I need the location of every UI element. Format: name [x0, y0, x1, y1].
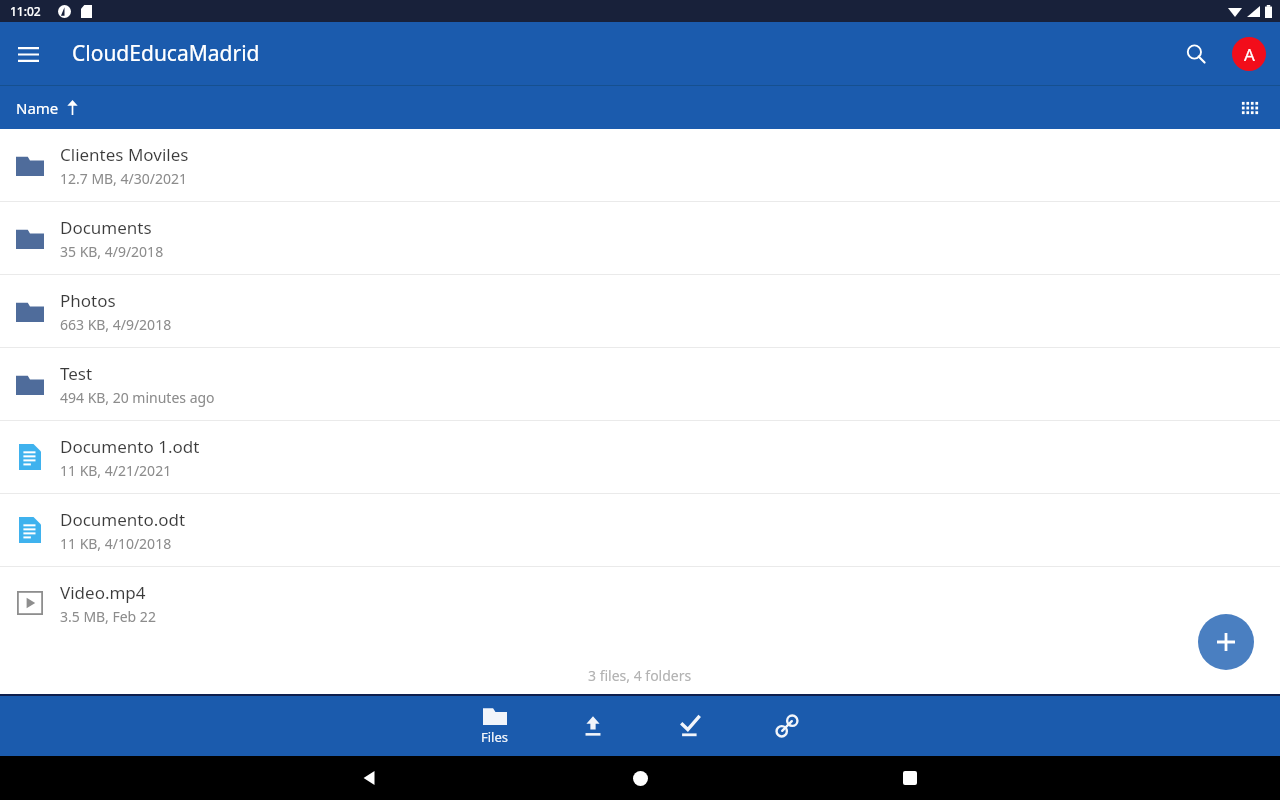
staticText: Documento.odt: [60, 508, 186, 531]
staticText: 663 KB, 4/9/2018: [60, 315, 172, 334]
button[interactable]: Account: [1232, 37, 1266, 71]
staticText: Photos: [60, 289, 116, 312]
button[interactable]: Photos: [0, 275, 1280, 347]
button[interactable]: Home: [620, 758, 660, 798]
staticText: Documento 1.odt: [60, 435, 200, 458]
staticText: Clientes Moviles: [60, 143, 189, 166]
button[interactable]: Recent apps: [890, 758, 930, 798]
staticText: Test: [60, 362, 93, 385]
staticText: CloudEducaMadrid: [72, 39, 260, 68]
button[interactable]: Documento.odt: [0, 494, 1280, 566]
staticText: 494 KB, 20 minutes ago: [60, 388, 215, 407]
button[interactable]: Shared links: [738, 696, 835, 756]
button[interactable]: Name: [0, 86, 89, 129]
button[interactable]: Documento 1.odt: [0, 421, 1280, 493]
staticText: 35 KB, 4/9/2018: [60, 242, 164, 261]
button[interactable]: Files: [446, 696, 544, 756]
staticText: 11 KB, 4/21/2021: [60, 461, 172, 480]
button[interactable]: Upload: [544, 696, 641, 756]
staticText: 11 KB, 4/10/2018: [60, 534, 172, 553]
staticText: 3.5 MB, Feb 22: [60, 607, 156, 626]
staticText: 12.7 MB, 4/30/2021: [60, 169, 187, 188]
staticText: Video.mp4: [60, 581, 146, 604]
button[interactable]: Documents: [0, 202, 1280, 274]
button[interactable]: Video.mp4: [0, 567, 1280, 639]
staticText: 11:02: [10, 3, 41, 19]
button[interactable]: Add: [1198, 614, 1254, 670]
staticText: 3 files, 4 folders: [588, 666, 692, 685]
button[interactable]: Open navigation menu: [8, 34, 48, 74]
button[interactable]: Switch to grid view: [1232, 90, 1268, 126]
button[interactable]: Select files: [641, 696, 738, 756]
button[interactable]: Search: [1174, 32, 1218, 76]
staticText: Documents: [60, 216, 152, 239]
staticText: Files: [481, 728, 509, 746]
staticText: Name: [16, 98, 59, 118]
staticText: A: [1244, 43, 1255, 66]
button[interactable]: Test: [0, 348, 1280, 420]
button[interactable]: Clientes Moviles: [0, 129, 1280, 201]
button[interactable]: Back: [350, 758, 390, 798]
